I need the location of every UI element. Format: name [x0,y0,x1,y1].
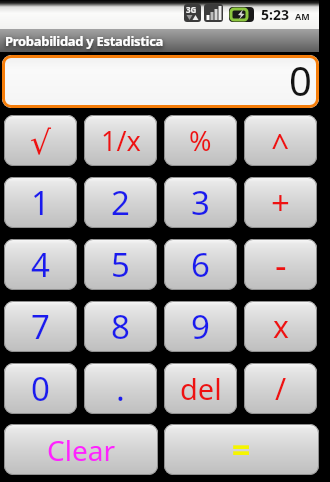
staticText: 0 [31,366,50,411]
button[interactable]: 5 [84,239,157,290]
button[interactable]: 0 [2,55,319,108]
button[interactable]: 3 [164,177,237,228]
staticText: / [275,368,287,409]
staticText: 5 [111,242,130,287]
staticText: 5:23 [261,5,289,24]
staticText: 2 [111,180,130,225]
button[interactable]: 6 [164,239,237,290]
button[interactable]: √ [4,115,77,166]
button[interactable]: - [244,239,317,290]
staticText: 1/x [101,122,141,159]
staticText: del [180,369,222,408]
button[interactable]: 1 [4,177,77,228]
button[interactable]: 8 [84,301,157,352]
button[interactable]: x [244,301,317,352]
staticText: 3 [191,180,210,225]
staticText: AM [295,10,310,22]
staticText: 6 [191,242,210,287]
button[interactable]: Clear [4,424,158,475]
staticText: 3G [186,4,197,15]
staticText: Probabilidad y Estadistica [5,32,164,50]
button[interactable]: 7 [4,301,77,352]
staticText: 4 [31,242,50,287]
staticText: 9 [191,304,210,349]
button[interactable]: 4 [4,239,77,290]
button[interactable]: 2 [84,177,157,228]
button[interactable]: + [244,177,317,228]
staticText: √ [30,123,52,161]
staticText: x [273,306,289,347]
staticText: ^ [271,124,290,166]
staticText: = [232,428,251,472]
button[interactable]: 1/x [84,115,157,166]
staticText: Clear [47,431,115,469]
staticText: 7 [31,304,50,349]
button[interactable]: 0 [4,363,77,414]
staticText: + [271,180,290,225]
staticText: 8 [111,304,130,349]
staticText: . [116,366,125,411]
staticText: - [275,240,287,289]
button[interactable]: / [244,363,317,414]
button[interactable]: 9 [164,301,237,352]
button[interactable]: . [84,363,157,414]
staticText: 0 [289,55,312,106]
button[interactable]: ^ [244,115,317,166]
staticText: 1 [31,180,50,225]
button[interactable]: del [164,363,237,414]
button[interactable]: = [164,424,319,475]
button[interactable]: % [164,115,237,166]
staticText: % [189,122,212,159]
